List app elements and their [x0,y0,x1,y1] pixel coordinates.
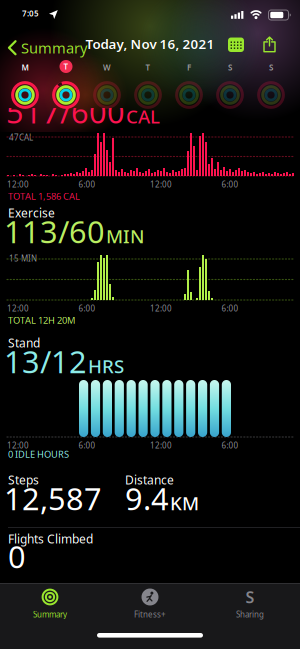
staticText: 0 IDLE HOURS [8,448,69,460]
staticText: 6:00 [221,303,238,314]
staticText: Exercise [8,205,55,221]
staticText: 12:00 [150,440,172,451]
staticText: 6:00 [78,303,95,314]
staticText: F [187,62,191,73]
staticText: 0 [8,536,26,577]
staticText: Fitness+ [134,609,166,620]
staticText: T [145,62,150,73]
staticText: 6:00 [221,440,238,451]
button[interactable]: Summary [9,38,87,57]
button[interactable]: S [200,587,300,620]
button[interactable] [175,81,203,109]
staticText: TOTAL 1,586 CAL [8,190,80,202]
staticText: 13/12 [4,341,87,382]
staticText: 9.4 [125,478,169,519]
staticText: TOTAL 12H 20M [8,314,75,326]
staticText: 7:05 [22,8,39,19]
staticText: T [63,61,68,72]
staticText: S [228,62,232,73]
button[interactable] [52,81,80,109]
staticText: 12:00 [150,303,172,314]
staticText: Flights Climbed [8,531,93,547]
staticText: 12:00 [7,179,29,190]
staticText: 15 MIN [9,253,37,264]
button[interactable] [216,81,244,109]
staticText: 12,587 [4,478,102,519]
staticText: Today, Nov 16, 2021 [85,35,214,53]
staticText: HRS [88,354,124,378]
staticText: 12:00 [150,179,172,190]
staticText: Stand [8,335,40,351]
button[interactable]: Fitness+ [100,587,200,620]
staticText: S [245,586,254,608]
staticText: Distance [125,472,174,488]
button[interactable] [228,37,244,52]
staticText: 517/600 [6,91,125,132]
button[interactable] [134,81,162,109]
staticText: 113/60 [4,211,105,252]
staticText: M [21,62,28,73]
staticText: S [269,62,273,73]
button[interactable] [93,81,121,109]
button[interactable] [11,81,39,109]
staticText: MIN [106,224,144,248]
staticText: W [103,62,111,73]
staticText: Sharing [236,609,264,620]
staticText: 12:00 [7,303,29,314]
staticText: 6:00 [78,440,95,451]
staticText: 6:00 [221,179,238,190]
button[interactable]: Summary [0,587,100,620]
staticText: KM [170,491,199,515]
button[interactable] [263,36,276,52]
staticText: 12:00 [7,440,29,451]
button[interactable] [257,81,285,109]
staticText: 47CAL [9,132,33,143]
staticText: Summary [33,609,67,620]
staticText: 6:00 [78,179,95,190]
staticText: CAL [126,104,160,129]
staticText: Steps [8,472,39,488]
staticText: Summary [21,38,87,57]
